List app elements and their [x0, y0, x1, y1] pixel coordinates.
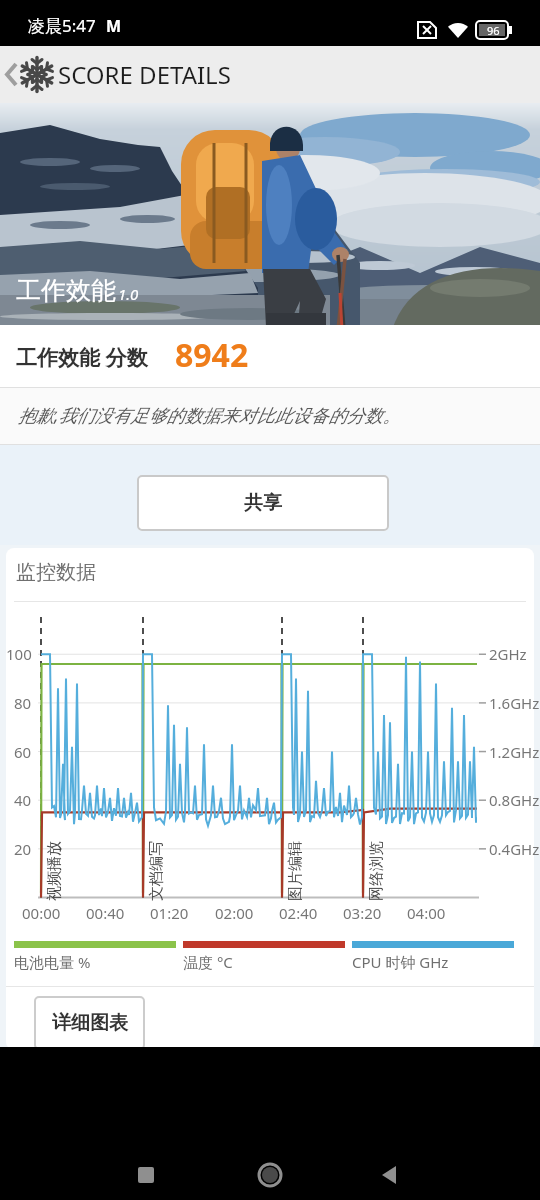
- staticText: 1.6GHz: [489, 693, 540, 713]
- staticText: 8942: [175, 333, 249, 377]
- staticText: 80: [14, 693, 32, 713]
- staticText: 04:00: [407, 903, 446, 923]
- staticText: 01:20: [150, 903, 189, 923]
- staticText: 详细图表: [52, 1011, 128, 1035]
- staticText: 视频播放: [45, 841, 64, 901]
- staticText: 2GHz: [489, 644, 527, 664]
- staticText: M: [106, 15, 122, 37]
- staticText: 工作效能: [16, 275, 116, 306]
- button[interactable]: [128, 1157, 164, 1193]
- staticText: 0.8GHz: [489, 790, 540, 810]
- staticText: 工作效能 分数: [16, 343, 148, 372]
- staticText: 电池电量 %: [14, 952, 91, 972]
- staticText: 03:20: [343, 903, 382, 923]
- button[interactable]: 共享: [137, 475, 389, 531]
- staticText: 02:00: [215, 903, 254, 923]
- staticText: 网络浏览: [367, 841, 386, 901]
- staticText: 96: [487, 23, 500, 38]
- staticText: 02:40: [279, 903, 318, 923]
- staticText: 1.0: [118, 284, 139, 304]
- staticText: 100: [6, 644, 32, 664]
- staticText: 图片编辑: [286, 841, 305, 901]
- staticText: 凌晨5:47: [28, 14, 96, 37]
- staticText: CPU 时钟 GHz: [352, 952, 449, 972]
- staticText: 文档编写: [147, 841, 166, 901]
- staticText: 40: [14, 790, 32, 810]
- staticText: 00:40: [86, 903, 125, 923]
- staticText: SCORE DETAILS: [58, 58, 231, 91]
- staticText: 0.4GHz: [489, 839, 540, 859]
- button[interactable]: [0, 46, 56, 103]
- button[interactable]: [372, 1157, 408, 1193]
- staticText: 60: [14, 742, 32, 762]
- staticText: 共享: [244, 491, 282, 515]
- staticText: 20: [14, 839, 32, 859]
- button[interactable]: [252, 1157, 288, 1193]
- staticText: 温度 °C: [183, 952, 233, 972]
- staticText: 抱歉,我们没有足够的数据来对比此设备的分数。: [18, 403, 401, 428]
- staticText: 00:00: [22, 903, 61, 923]
- staticText: 监控数据: [16, 560, 96, 585]
- staticText: 1.2GHz: [489, 742, 540, 762]
- button[interactable]: 详细图表: [34, 996, 145, 1050]
